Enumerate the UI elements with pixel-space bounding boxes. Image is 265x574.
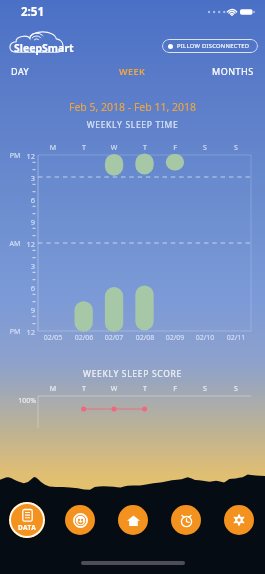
button[interactable]: Home (118, 505, 148, 535)
button[interactable]: SleepSmart (9, 29, 69, 53)
staticText: 02/11 (221, 333, 251, 343)
staticText: 02/07 (99, 333, 129, 343)
staticText: T (74, 384, 94, 394)
staticText: 9 (22, 217, 35, 227)
staticText: T (135, 384, 155, 394)
staticText: WEEK (119, 65, 146, 77)
staticText: PILLOW DISCONNECTED (177, 42, 250, 50)
staticText: M (43, 384, 63, 394)
staticText: 2:51 (21, 4, 44, 20)
staticText: 12 (22, 151, 35, 161)
staticText: S (226, 143, 246, 153)
staticText: PM (8, 327, 22, 337)
staticText: SleepSmart (14, 41, 74, 55)
button[interactable]: WEEK (110, 61, 155, 81)
staticText: W (104, 143, 124, 153)
staticText: 9 (22, 305, 35, 315)
staticText: 12 (22, 327, 35, 337)
button[interactable]: PILLOW DISCONNECTED (162, 39, 258, 53)
staticText: S (226, 384, 246, 394)
staticText: S (195, 384, 215, 394)
staticText: 12 (22, 239, 35, 249)
staticText: T (74, 143, 94, 153)
staticText: W (104, 384, 124, 394)
staticText: DATA (18, 523, 37, 532)
staticText: F (165, 143, 185, 153)
staticText: 100% (14, 396, 36, 406)
button[interactable]: MONTHS (205, 61, 261, 81)
staticText: 3 (22, 173, 35, 183)
staticText: 6 (22, 195, 35, 205)
button[interactable]: Data (9, 502, 45, 538)
staticText: Feb 5, 2018 - Feb 11, 2018 (0, 100, 265, 114)
staticText: MONTHS (212, 65, 254, 77)
staticText: 02/06 (69, 333, 99, 343)
staticText: 02/09 (160, 333, 190, 343)
staticText: M (43, 143, 63, 153)
staticText: F (165, 384, 185, 394)
staticText: 02/08 (130, 333, 160, 343)
staticText: 3 (22, 261, 35, 271)
staticText: 02/10 (190, 333, 220, 343)
button[interactable]: Sleep tracking (65, 505, 95, 535)
staticText: DAY (11, 65, 30, 77)
staticText: S (195, 143, 215, 153)
button[interactable]: Settings (224, 505, 254, 535)
staticText: 02/05 (38, 333, 68, 343)
staticText: WEEKLY SLEEP SCORE (0, 368, 265, 380)
staticText: AM (8, 239, 22, 249)
staticText: PM (8, 151, 22, 161)
staticText: 6 (22, 283, 35, 293)
staticText: WEEKLY SLEEP TIME (0, 119, 265, 131)
staticText: T (135, 143, 155, 153)
button[interactable]: Alarm (171, 505, 201, 535)
button[interactable]: DAY (4, 61, 37, 81)
